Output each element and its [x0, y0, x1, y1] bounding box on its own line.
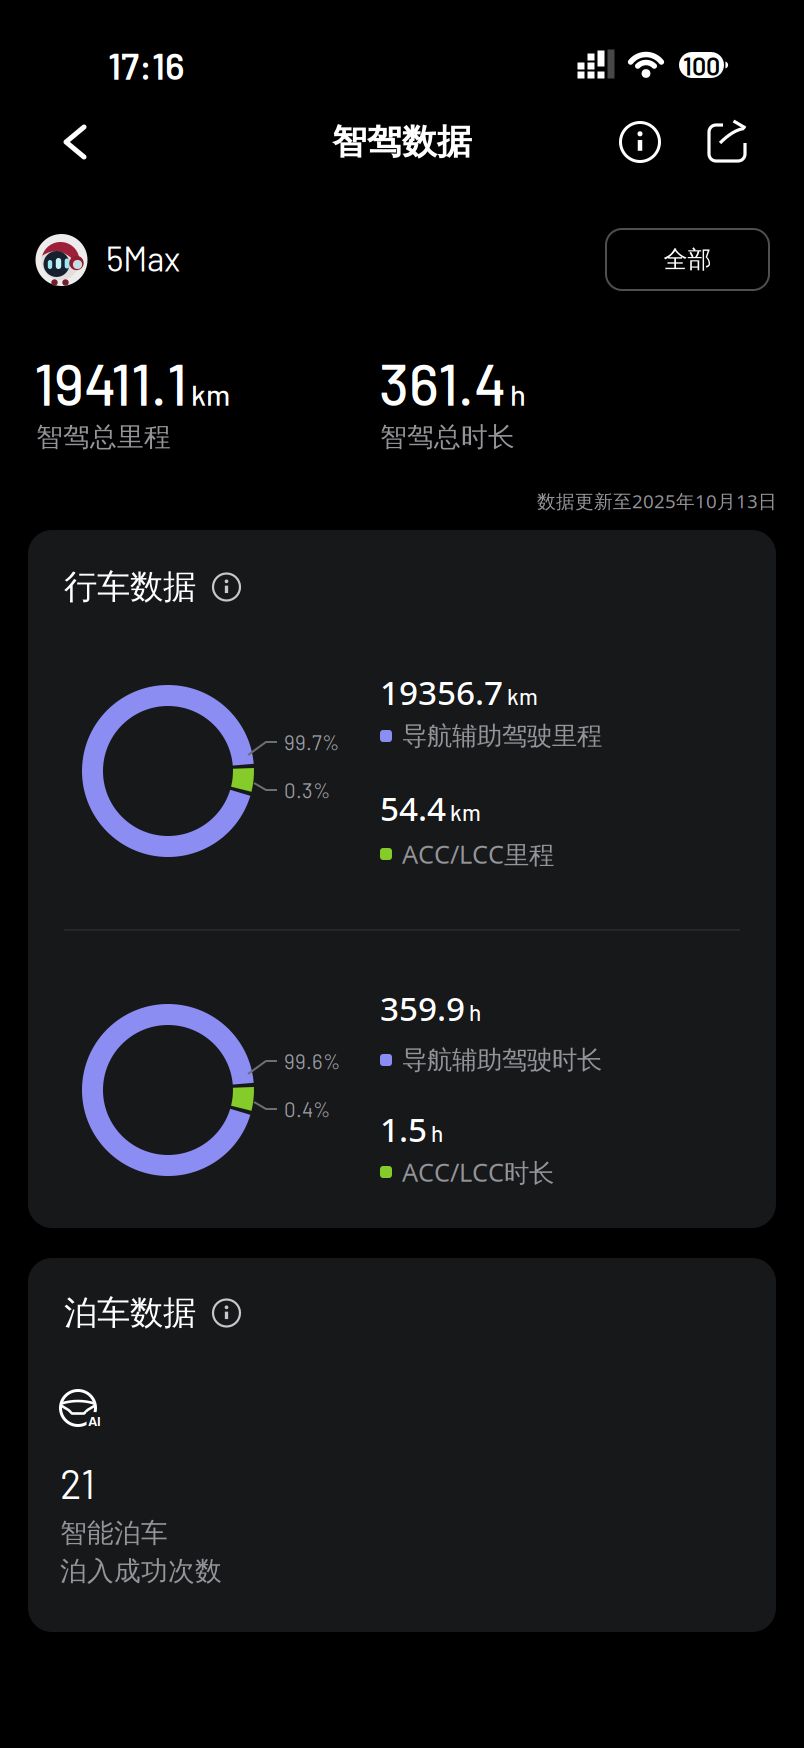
staticText: 智驾数据: [332, 121, 472, 163]
staticText: 导航辅助驾驶里程: [402, 720, 602, 751]
button[interactable]: Info: [211, 1297, 242, 1328]
staticText: km: [191, 376, 230, 412]
staticText: h: [431, 1119, 443, 1146]
staticText: 智驾总里程: [36, 421, 171, 453]
staticText: 100: [683, 50, 720, 80]
staticText: 行车数据: [64, 566, 196, 607]
staticText: h: [469, 998, 481, 1025]
staticText: 99.6%: [284, 1049, 340, 1073]
staticText: ACC/LCC里程: [402, 837, 554, 871]
staticText: 导航辅助驾驶时长: [402, 1044, 602, 1075]
staticText: 全部: [663, 245, 711, 274]
button[interactable]: Share: [707, 121, 747, 163]
staticText: 智驾总时长: [380, 421, 515, 453]
staticText: 泊入成功次数: [60, 1555, 222, 1587]
staticText: 数据更新至2025年10月13日: [537, 489, 777, 513]
staticText: 361.4: [379, 349, 506, 417]
staticText: 19411.1: [34, 349, 187, 417]
staticText: 泊车数据: [64, 1292, 196, 1333]
staticText: h: [510, 376, 526, 412]
staticText: 0.4%: [284, 1097, 330, 1121]
staticText: 54.4: [380, 786, 446, 830]
staticText: km: [450, 798, 481, 825]
staticText: AI: [88, 1412, 101, 1429]
button[interactable]: Back: [58, 123, 94, 161]
staticText: km: [507, 682, 538, 709]
button[interactable]: 全部: [606, 229, 769, 290]
staticText: 19356.7: [380, 670, 503, 714]
staticText: 17:16: [108, 43, 185, 87]
staticText: 1.5: [380, 1107, 427, 1151]
staticText: 21: [60, 1459, 95, 1507]
staticText: 0.3%: [284, 778, 330, 802]
staticText: 359.9: [380, 986, 465, 1030]
staticText: 99.7%: [284, 730, 339, 754]
staticText: 智能泊车: [60, 1517, 168, 1549]
button[interactable]: Info: [618, 120, 662, 164]
staticText: 5Max: [106, 238, 180, 278]
button[interactable]: Info: [211, 571, 242, 602]
staticText: ACC/LCC时长: [402, 1155, 554, 1189]
